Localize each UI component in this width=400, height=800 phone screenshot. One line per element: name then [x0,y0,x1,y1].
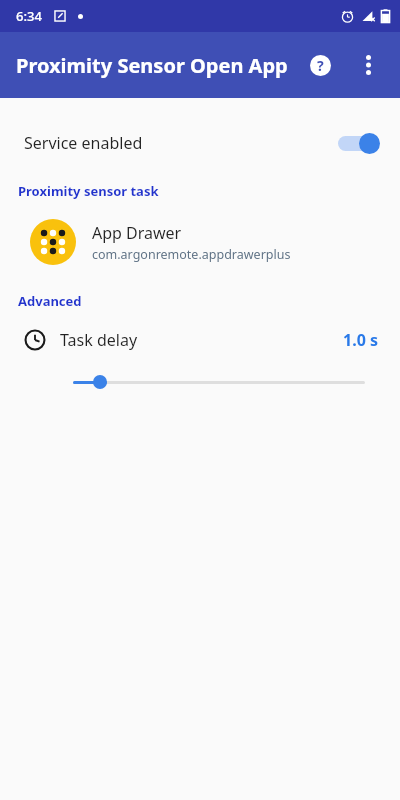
button[interactable]: Service enabled [0,116,400,170]
staticText: Advanced [18,292,82,310]
button[interactable]: Task delay [0,322,400,358]
staticText: ? [317,56,324,75]
staticText: 6:34 [16,7,42,25]
button[interactable]: Help [296,41,344,89]
staticText: Service enabled [24,132,143,154]
button[interactable]: Task delay slider [0,366,400,398]
button[interactable]: App Drawer [0,210,400,274]
staticText: Proximity Sensor Open App [16,52,288,79]
button[interactable]: More options [344,41,392,89]
staticText: Proximity sensor task [18,182,159,200]
staticText: 1.0 s [343,329,378,351]
staticText: com.argonremote.appdrawerplus [92,246,291,263]
staticText: App Drawer [92,222,182,244]
staticText: Task delay [60,329,138,351]
